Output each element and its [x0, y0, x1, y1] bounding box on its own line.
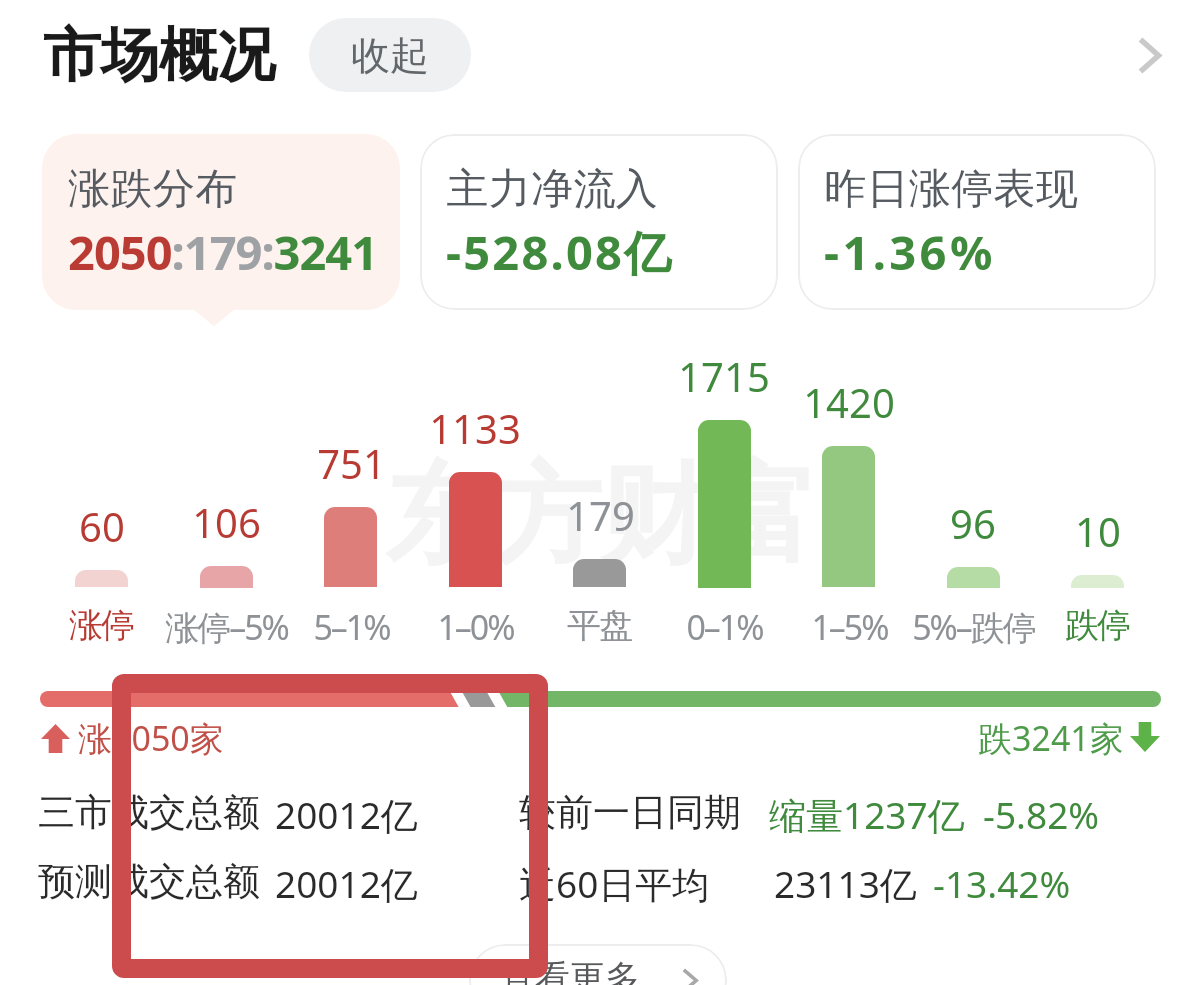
- staticText: 涨停: [70, 604, 134, 647]
- staticText: 近60日平均: [519, 858, 710, 909]
- staticText: 1133: [429, 401, 521, 455]
- staticText: 涨停–5%: [165, 604, 288, 650]
- staticText: 1420: [803, 375, 895, 429]
- staticText: -5.82%: [983, 789, 1100, 839]
- button[interactable]: 查看更多: [469, 944, 727, 985]
- button[interactable]: 主力净流入: [420, 134, 778, 310]
- staticText: 0–1%: [686, 604, 763, 650]
- staticText: 市场概况: [43, 19, 275, 92]
- other: Decliners: [1130, 722, 1160, 752]
- staticText: 跌3241家: [978, 715, 1124, 761]
- staticText: 23113亿: [774, 858, 917, 909]
- staticText: 主力净流入: [446, 163, 658, 216]
- staticText: 查看更多: [500, 956, 640, 985]
- staticText: 179: [566, 488, 635, 542]
- staticText: 106: [192, 495, 261, 549]
- staticText: 平盘: [568, 604, 632, 647]
- other: Advancers: [41, 724, 70, 753]
- staticText: 1715: [678, 349, 770, 403]
- staticText: 20012亿: [275, 858, 418, 909]
- button[interactable]: 昨日涨停表现: [798, 134, 1156, 310]
- staticText: 三市成交总额: [38, 789, 260, 836]
- staticText: 缩量1237亿: [769, 789, 965, 840]
- staticText: 2050:179:3241: [68, 220, 378, 284]
- staticText: 751: [317, 436, 386, 490]
- staticText: 较前一日同期: [519, 789, 741, 836]
- staticText: 5–1%: [313, 604, 390, 650]
- staticText: 预测成交总额: [38, 858, 260, 905]
- staticText: 涨跌分布: [68, 163, 238, 216]
- staticText: 东方财富: [385, 448, 817, 584]
- staticText: 昨日涨停表现: [824, 163, 1079, 216]
- staticText: 涨2050家: [78, 715, 224, 761]
- staticText: 5%–跌停: [912, 604, 1035, 650]
- staticText: 60: [79, 499, 125, 553]
- staticText: 96: [950, 496, 996, 550]
- staticText: -528.08亿: [446, 220, 674, 284]
- button[interactable]: 涨跌分布: [42, 134, 400, 310]
- staticText: 1–0%: [437, 604, 514, 650]
- staticText: 1–5%: [811, 604, 888, 650]
- staticText: 20012亿: [275, 789, 418, 840]
- staticText: 跌停: [1066, 604, 1130, 647]
- staticText: -1.36%: [824, 220, 996, 284]
- staticText: 收起: [351, 31, 429, 80]
- staticText: -13.42%: [933, 858, 1071, 908]
- button[interactable]: 收起: [309, 18, 471, 92]
- staticText: 10: [1075, 504, 1121, 558]
- button[interactable]: Open market overview: [1104, 10, 1194, 100]
